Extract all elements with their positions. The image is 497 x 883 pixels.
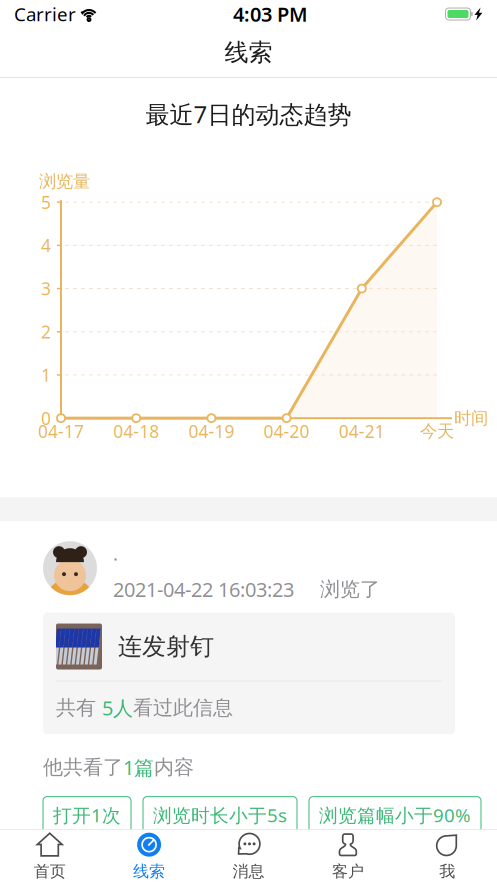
staticText: 2021-04-22 16:03:23 — [113, 576, 294, 603]
staticText: 04-18 — [113, 420, 159, 443]
staticText: . — [113, 541, 118, 566]
staticText: 浏览时长小于5s — [153, 803, 287, 827]
staticText: 线索 — [224, 38, 272, 67]
staticText: 3 — [41, 277, 51, 300]
staticText: 共有 — [56, 695, 102, 720]
staticText: 5 — [41, 191, 51, 214]
button[interactable]: 客户 — [298, 830, 398, 883]
staticText: 最近7日的动态趋势 — [145, 98, 351, 130]
staticText: 0 — [41, 407, 51, 430]
staticText: 线索 — [133, 862, 165, 881]
button[interactable]: 首页 — [0, 830, 99, 883]
staticText: 浏览了 — [320, 577, 380, 601]
staticText: 看过此信息 — [133, 695, 233, 720]
staticText: 1篇 — [123, 754, 154, 781]
staticText: 04-21 — [339, 420, 385, 443]
staticText: 浏览量 — [39, 171, 90, 192]
staticText: 首页 — [34, 862, 66, 881]
staticText: 消息 — [232, 862, 264, 881]
staticText: 4 — [41, 234, 51, 257]
staticText: 今天 — [420, 420, 454, 442]
staticText: 04-19 — [188, 420, 234, 443]
staticText: 5人 — [102, 694, 133, 721]
staticText: 他共看了 — [43, 755, 123, 780]
staticText: 2 — [41, 320, 51, 343]
staticText: 4:03 PM — [233, 1, 308, 27]
staticText: 04-17 — [38, 420, 84, 443]
staticText: 客户 — [332, 862, 364, 881]
button[interactable]: 我 — [398, 830, 497, 883]
staticText: 我 — [439, 862, 455, 881]
staticText: 内容 — [154, 755, 194, 780]
staticText: 04-20 — [264, 420, 310, 443]
staticText: Carrier — [14, 2, 76, 26]
button[interactable]: 消息 — [199, 830, 298, 883]
staticText: 浏览篇幅小于90% — [319, 803, 471, 827]
staticText: 时间 — [454, 407, 488, 429]
staticText: 连发射钉 — [118, 632, 214, 661]
staticText: 1 — [41, 363, 51, 386]
staticText: 打开1次 — [53, 803, 121, 827]
button[interactable]: 线索 — [99, 830, 199, 883]
